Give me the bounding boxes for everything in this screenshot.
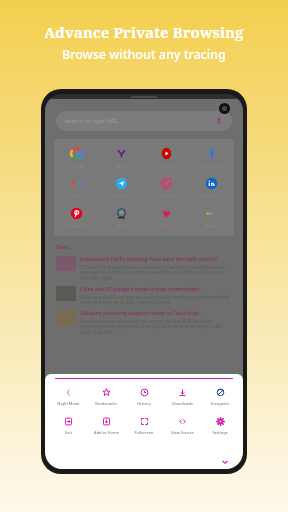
staticText: Fullscreen	[134, 430, 154, 435]
staticText: Google	[69, 163, 85, 169]
button[interactable]: Incognito	[201, 387, 239, 406]
staticText: Facebook	[201, 163, 222, 169]
button[interactable]: Dating	[144, 206, 189, 229]
staticText: Salisbury poisoning suspects linked to C…	[80, 310, 200, 317]
staticText: Pinterest	[67, 223, 86, 229]
staticText: Downloads	[172, 401, 193, 406]
button[interactable]: Google	[54, 146, 99, 169]
staticText: Telegram	[112, 193, 132, 199]
button[interactable]: Badoo	[189, 206, 234, 229]
button[interactable]: Bookmarks	[87, 387, 125, 406]
staticText: Exit	[65, 430, 72, 435]
button[interactable]: Bigo	[99, 206, 144, 229]
staticText: Night Mode	[57, 401, 80, 406]
button[interactable]: Night Mode	[49, 387, 87, 406]
staticText: History	[137, 401, 151, 406]
button[interactable]: Downloads	[163, 387, 201, 406]
button[interactable]: China and US pledge climate change commi…	[56, 286, 232, 306]
button[interactable]: Telegram	[99, 176, 144, 199]
staticText: Advance Private Browsing	[44, 22, 244, 42]
staticText: Officials in Indianapolis have released …	[80, 264, 232, 282]
staticText: View Source	[171, 430, 194, 435]
staticText: Bigo	[117, 223, 127, 229]
staticText: YouTube	[157, 163, 176, 169]
staticText: Badoo	[205, 223, 219, 229]
button[interactable]: Instagram	[144, 176, 189, 199]
button[interactable]: LinkedIn	[189, 176, 234, 199]
button[interactable]: Settings	[201, 416, 239, 435]
staticText: Settings	[212, 430, 228, 435]
staticText: Dating	[159, 223, 174, 229]
button[interactable]: Salisbury poisoning suspects linked to C…	[56, 310, 232, 336]
staticText: LinkedIn	[202, 193, 221, 199]
button[interactable]: Fullscreen	[125, 416, 163, 435]
staticText: search or type URL	[65, 117, 118, 125]
staticText: Bookmarks	[95, 401, 117, 406]
staticText: Add to Home	[94, 430, 119, 435]
staticText: Incognito	[211, 401, 229, 406]
button[interactable]: Facebook	[189, 146, 234, 169]
button[interactable]: Yahoo	[99, 146, 144, 169]
button[interactable]: Add to Home	[87, 416, 125, 435]
staticText: China and US pledge climate change commi…	[80, 286, 200, 293]
button[interactable]: search or type URL	[56, 111, 232, 131]
staticText: Yahoo	[115, 163, 129, 169]
staticText: News	[56, 244, 69, 251]
staticText: Instagram	[156, 193, 178, 199]
button[interactable]: Indianapolis FedEx shooting: Nine were t…	[56, 256, 232, 282]
staticText: Gmail	[70, 193, 83, 199]
staticText: Browse without any tracing	[62, 46, 226, 63]
button[interactable]: YouTube	[144, 146, 189, 169]
staticText: Indianapolis FedEx shooting: Nine were t…	[80, 256, 218, 263]
staticText: Two Russian men suspected of carrying ou…	[80, 318, 232, 336]
button[interactable]: Gmail	[54, 176, 99, 199]
button[interactable]: View Source	[163, 416, 201, 435]
button[interactable]: History	[125, 387, 163, 406]
button[interactable]: Pinterest	[54, 206, 99, 229]
button[interactable]: Exit	[49, 416, 87, 435]
staticText: China and the US say they are committed …	[80, 294, 232, 306]
